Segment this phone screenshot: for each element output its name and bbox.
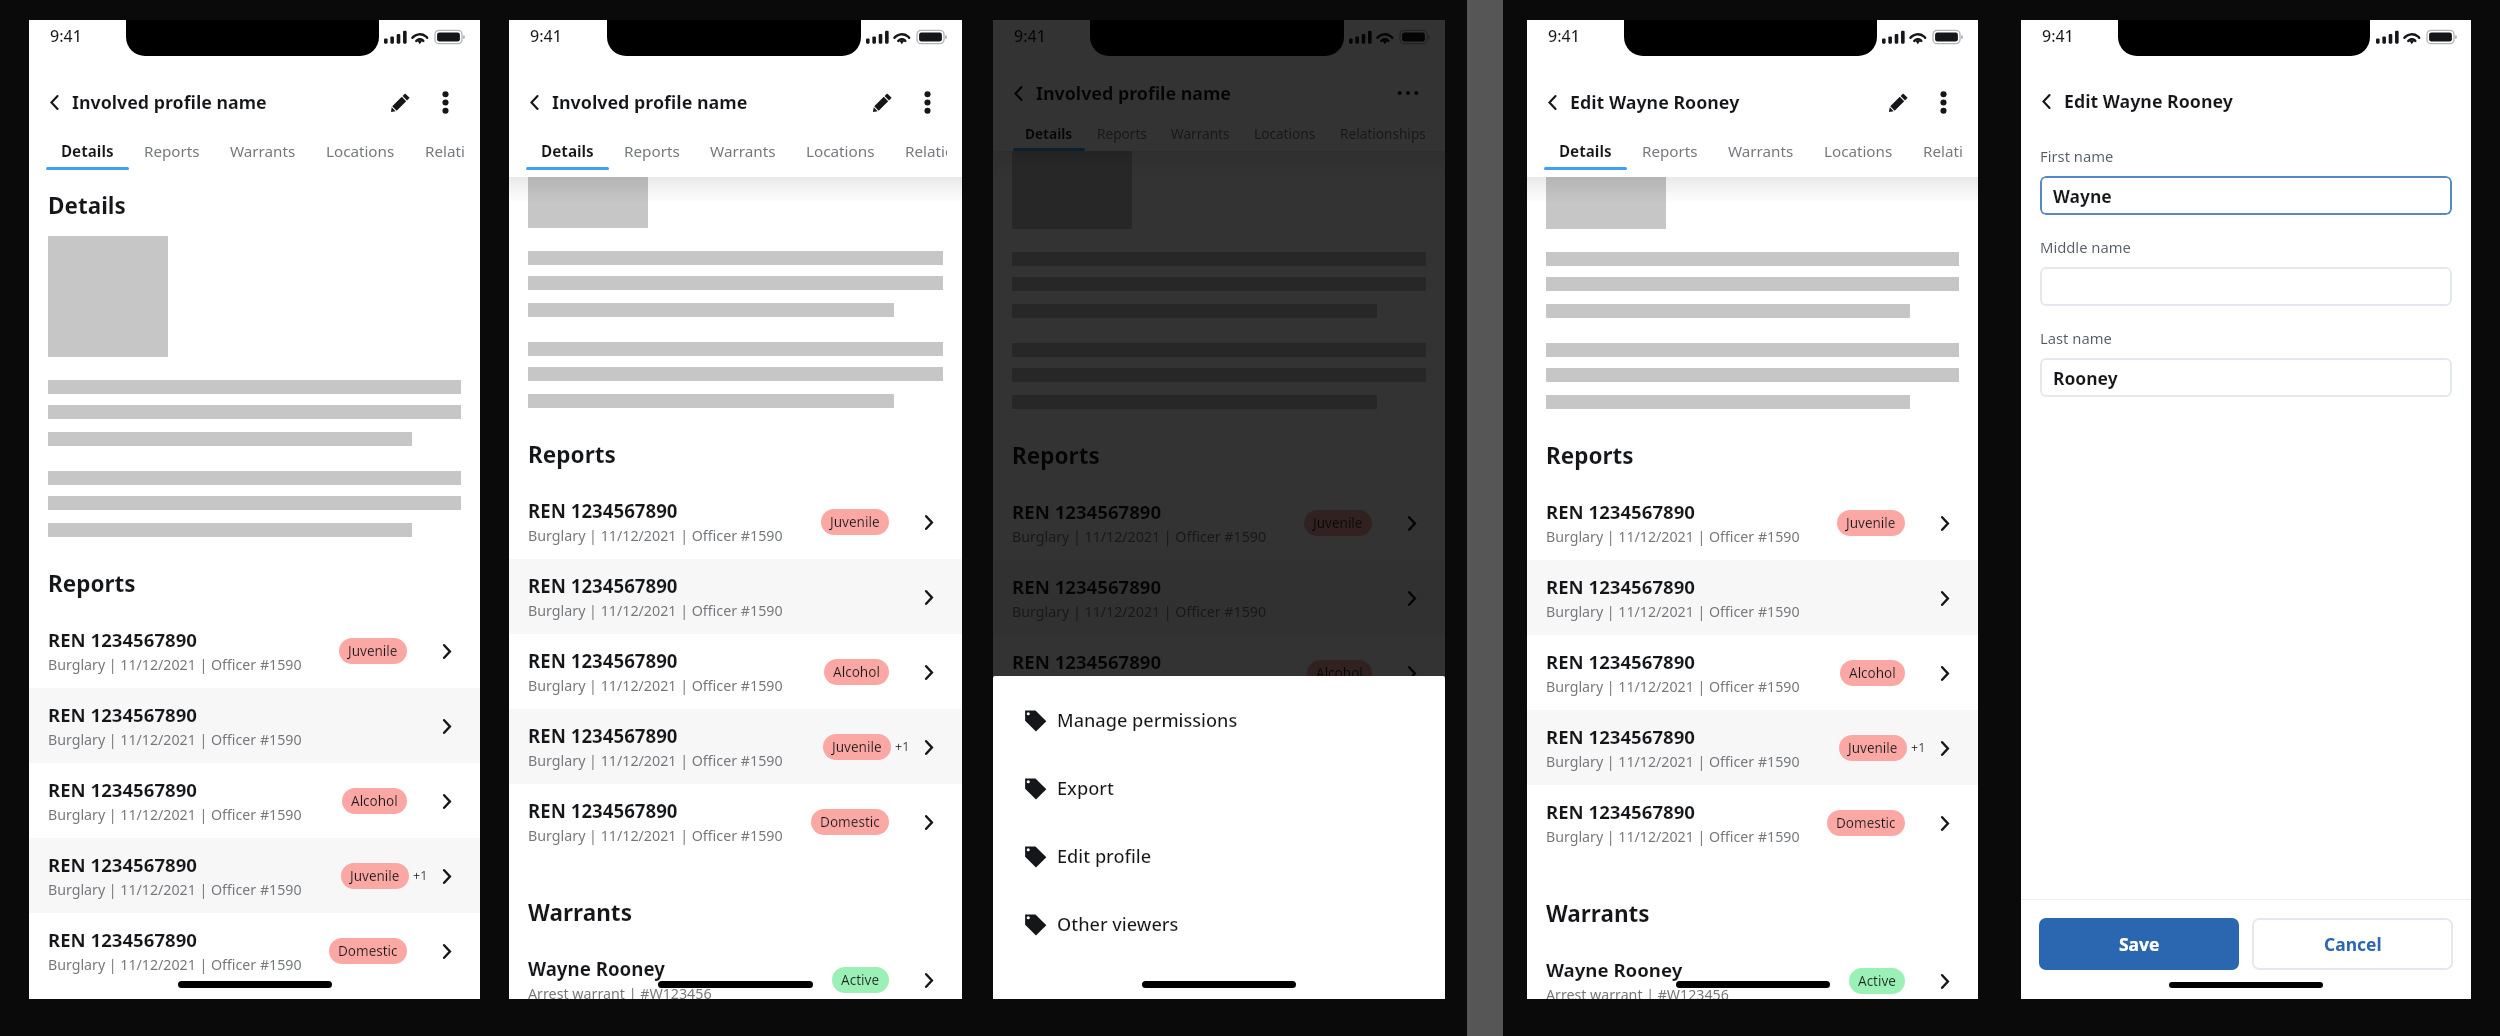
button[interactable]: Details	[46, 137, 129, 170]
staticText: +1	[895, 738, 910, 755]
button[interactable]: REN 1234567890	[509, 634, 962, 709]
button[interactable]: More options	[916, 91, 939, 114]
button[interactable]: Back	[1539, 89, 1565, 115]
button[interactable]: Edit profile	[993, 822, 1445, 890]
button[interactable]: More options	[434, 91, 457, 114]
button[interactable]: Locations	[1809, 137, 1908, 170]
button[interactable]: Relationships	[410, 137, 480, 170]
button[interactable]: Wayne	[2040, 176, 2452, 215]
button[interactable]: REN 1234567890	[993, 635, 1445, 710]
staticText: Burglary | 11/12/2021 | Officer #1590	[48, 955, 302, 974]
staticText: Burglary | 11/12/2021 | Officer #1590	[528, 526, 783, 545]
staticText: Juvenile	[1846, 514, 1896, 532]
staticText: 9:41	[530, 25, 562, 47]
button[interactable]: REN 1234567890	[29, 613, 480, 688]
button[interactable]: Edit	[1886, 90, 1910, 114]
staticText: REN 1234567890	[1546, 499, 1695, 524]
button[interactable]: REN 1234567890	[509, 484, 962, 559]
button[interactable]: REN 1234567890	[1527, 485, 1978, 560]
button[interactable]: REN 1234567890	[993, 785, 1445, 860]
button[interactable]: Locations	[791, 137, 890, 170]
button[interactable]: REN 1234567890	[1527, 635, 1978, 710]
button[interactable]: Back	[41, 89, 67, 115]
other: Open details	[1931, 810, 1957, 836]
staticText: Locations	[1824, 141, 1893, 162]
other: Open details	[915, 509, 941, 535]
staticText: 9:41	[1014, 25, 1046, 47]
button[interactable]: REN 1234567890	[29, 913, 480, 988]
staticText: REN 1234567890	[48, 777, 197, 802]
button[interactable]: REN 1234567890	[509, 709, 962, 784]
button[interactable]: Wayne Rooney	[509, 942, 962, 999]
button[interactable]: Reports	[129, 137, 215, 170]
button[interactable]: More options	[1932, 91, 1955, 114]
button[interactable]: REN 1234567890	[29, 688, 480, 763]
button[interactable]: Reports	[1627, 137, 1713, 170]
button[interactable]: Relationships	[1328, 120, 1438, 151]
staticText: REN 1234567890	[528, 573, 678, 598]
button[interactable]: Back	[521, 89, 547, 115]
button[interactable]: Edit	[388, 90, 412, 114]
button[interactable]: Other viewers	[993, 890, 1445, 958]
button[interactable]: Locations	[311, 137, 410, 170]
button[interactable]: Warrants	[215, 137, 311, 170]
button[interactable]: Details	[1013, 120, 1085, 151]
staticText: Reports	[48, 568, 136, 599]
button[interactable]: Reports	[609, 137, 695, 170]
staticText: REN 1234567890	[1012, 649, 1162, 674]
staticText: REN 1234567890	[528, 498, 678, 523]
button[interactable]: REN 1234567890	[1527, 710, 1978, 785]
staticText: REN 1234567890	[1012, 499, 1162, 524]
button[interactable]: REN 1234567890	[509, 784, 962, 859]
button[interactable]: Reports	[1085, 120, 1159, 151]
button[interactable]: Wayne Rooney	[1527, 943, 1978, 999]
other: Open details	[433, 863, 459, 889]
button[interactable]: Warrants	[695, 137, 791, 170]
staticText: +1	[413, 867, 428, 884]
button[interactable]: Edit	[870, 90, 894, 114]
button[interactable]: REN 1234567890	[1527, 560, 1978, 635]
button[interactable]: Save	[2039, 918, 2239, 970]
button[interactable]: Relationships	[890, 137, 962, 170]
button[interactable]: REN 1234567890	[509, 559, 962, 634]
button[interactable]: REN 1234567890	[29, 838, 480, 913]
button[interactable]: REN 1234567890	[993, 710, 1445, 785]
button[interactable]: More options	[1393, 78, 1423, 108]
button[interactable]	[2040, 267, 2452, 306]
staticText: Details	[48, 190, 126, 221]
button[interactable]: Export	[993, 754, 1445, 822]
button[interactable]: REN 1234567890	[29, 763, 480, 838]
button[interactable]: Relationships	[1908, 137, 1978, 170]
button[interactable]: Wayne Rooney	[993, 943, 1445, 999]
button[interactable]: Back	[1005, 80, 1031, 106]
staticText: Burglary | 11/12/2021 | Officer #1590	[48, 655, 302, 674]
staticText: Wayne Rooney	[528, 956, 665, 981]
button[interactable]: Cancel	[2252, 918, 2453, 970]
other: Open details	[1398, 660, 1424, 686]
button[interactable]: Manage permissions	[993, 686, 1445, 754]
button[interactable]: Warrants	[1159, 120, 1242, 151]
button[interactable]: REN 1234567890	[993, 560, 1445, 635]
button[interactable]: REN 1234567890	[1527, 785, 1978, 860]
staticText: Reports	[1642, 141, 1698, 162]
staticText: Warrants	[528, 897, 632, 928]
other: Open details	[433, 788, 459, 814]
staticText: Involved profile name	[1036, 81, 1232, 105]
button[interactable]: Rooney	[2040, 358, 2452, 397]
button[interactable]: Back	[2033, 88, 2059, 114]
button[interactable]: Warrants	[1713, 137, 1809, 170]
other: Open details	[433, 713, 459, 739]
button[interactable]: Details	[1544, 137, 1627, 170]
button[interactable]: Locations	[1242, 120, 1328, 151]
staticText: Details	[541, 141, 594, 162]
button[interactable]: REN 1234567890	[993, 485, 1445, 560]
button[interactable]: Details	[526, 137, 609, 170]
staticText: +1	[1911, 739, 1926, 756]
staticText: Warrants	[1728, 141, 1794, 162]
